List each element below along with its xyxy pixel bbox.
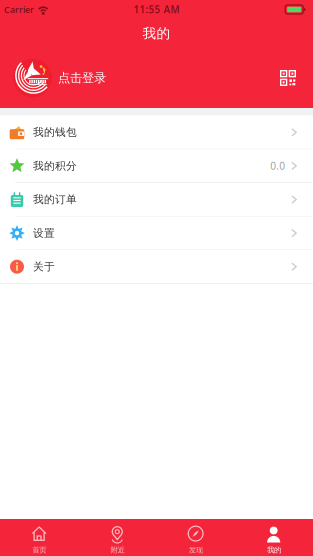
staticText: 发现 bbox=[189, 545, 203, 555]
staticText: 我的积分 bbox=[33, 159, 77, 173]
button[interactable]: 发现 bbox=[156, 519, 235, 556]
staticText: 11:55 AM bbox=[133, 3, 179, 16]
button[interactable]: 我的积分 bbox=[0, 149, 313, 182]
staticText: Carrier bbox=[4, 3, 34, 15]
staticText: 首页 bbox=[32, 545, 46, 555]
staticText: 我的 bbox=[142, 25, 170, 42]
staticText: 设置 bbox=[33, 226, 55, 240]
button[interactable]: 扫一扫 bbox=[270, 60, 313, 96]
button[interactable]: 我的钱包 bbox=[0, 116, 313, 149]
staticText: 点击登录 bbox=[58, 70, 106, 86]
button[interactable]: 关于 bbox=[0, 250, 313, 283]
staticText: 0.0 bbox=[270, 159, 285, 173]
staticText: 我的订单 bbox=[33, 193, 77, 206]
button[interactable]: 我的 bbox=[235, 519, 313, 556]
button[interactable]: 附近 bbox=[78, 519, 156, 556]
button[interactable]: 我的订单 bbox=[0, 183, 313, 216]
staticText: 附近 bbox=[110, 545, 124, 555]
staticText: 我的 bbox=[267, 545, 281, 555]
button[interactable]: 首页 bbox=[0, 519, 78, 556]
button[interactable]: 设置 bbox=[0, 217, 313, 250]
button[interactable]: 点击登录 bbox=[52, 62, 106, 94]
staticText: 我的钱包 bbox=[33, 126, 77, 139]
staticText: 关于 bbox=[33, 260, 55, 273]
